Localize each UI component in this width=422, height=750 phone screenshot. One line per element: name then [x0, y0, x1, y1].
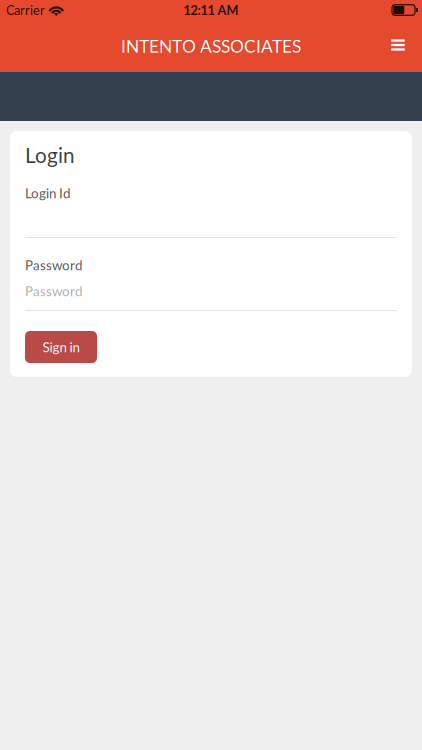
- staticText: Login Id: [25, 185, 70, 201]
- staticText: Password: [25, 283, 82, 299]
- staticText: Sign in: [42, 339, 79, 355]
- staticText: Login: [25, 143, 75, 167]
- staticText: Carrier: [6, 2, 45, 18]
- button[interactable]: Password: [25, 259, 397, 311]
- button[interactable]: Menu: [378, 24, 422, 68]
- staticText: Password: [25, 257, 82, 273]
- button[interactable]: Login Id: [25, 187, 397, 238]
- button[interactable]: Sign in: [25, 331, 97, 363]
- staticText: INTENTO ASSOCIATES: [121, 36, 301, 56]
- staticText: 12:11 AM: [183, 2, 238, 18]
